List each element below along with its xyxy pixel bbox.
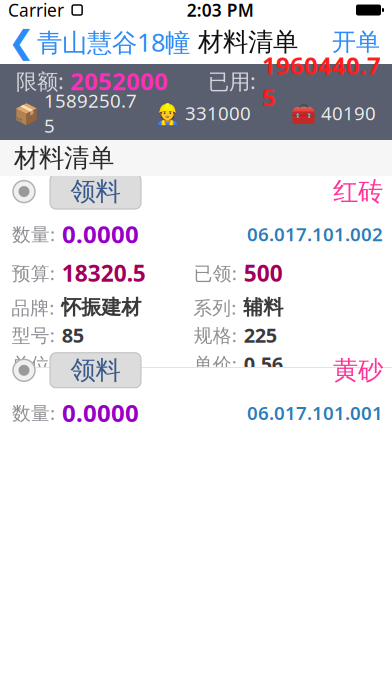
staticText: 1960440.75 [262,49,381,113]
staticText: 预算: [12,261,55,285]
staticText: 数量: [12,222,55,246]
staticText: 331000 [185,101,251,125]
staticText: 已用: [208,67,262,95]
staticText: 0.0000 [62,397,139,429]
staticText: 领料 [70,176,120,207]
button[interactable]: 领料 [0,368,392,559]
staticText: 单位: [12,351,55,376]
staticText: 规格: [194,323,237,347]
staticText: 单价: [194,351,237,376]
staticText: 06.017.101.001 [247,400,383,425]
staticText: 2:03 PM [187,0,254,21]
button[interactable]: 开单 [320,21,392,63]
staticText: 0.56 [244,350,283,377]
staticText: 数量: [12,400,55,425]
button[interactable]: 领料 [50,174,141,209]
staticText: 系列: [193,295,236,320]
staticText: 材料清单 [14,142,114,173]
staticText: 06.017.101.002 [247,222,383,246]
staticText: 225 [244,322,277,348]
staticText: 40190 [321,101,376,125]
staticText: 型号: [12,323,55,347]
staticText: 黄砂 [333,355,383,386]
staticText: 限额: [16,67,70,95]
staticText: 2052000 [70,65,168,97]
staticText: 红砖 [333,176,383,207]
staticText: 18320.5 [62,258,146,288]
staticText: 85 [62,322,84,348]
staticText: 👷 [155,100,185,126]
staticText: ❮ [8,24,35,60]
staticText: 块 [62,351,82,376]
staticText: 品牌: [11,295,54,320]
staticText: 1589250.75 [44,88,137,138]
staticText: 🧰 [291,100,321,126]
staticText: 辅料 [243,295,283,320]
staticText: 开单 [332,27,380,57]
staticText: 0.0000 [62,218,139,250]
button[interactable]: ❮ [0,18,190,66]
staticText: 领料 [70,355,120,386]
staticText: 已领: [194,261,237,285]
staticText: 材料清单 [190,26,298,57]
staticText: 怀振建材 [61,295,141,320]
staticText: Carrier [8,0,64,21]
button[interactable]: 领料 [50,353,141,388]
button[interactable]: 领料 [0,176,392,367]
staticText: 青山慧谷18幢 [37,25,190,59]
staticText: 500 [244,258,283,288]
staticText: 📦 [14,100,44,126]
staticText [64,0,70,25]
